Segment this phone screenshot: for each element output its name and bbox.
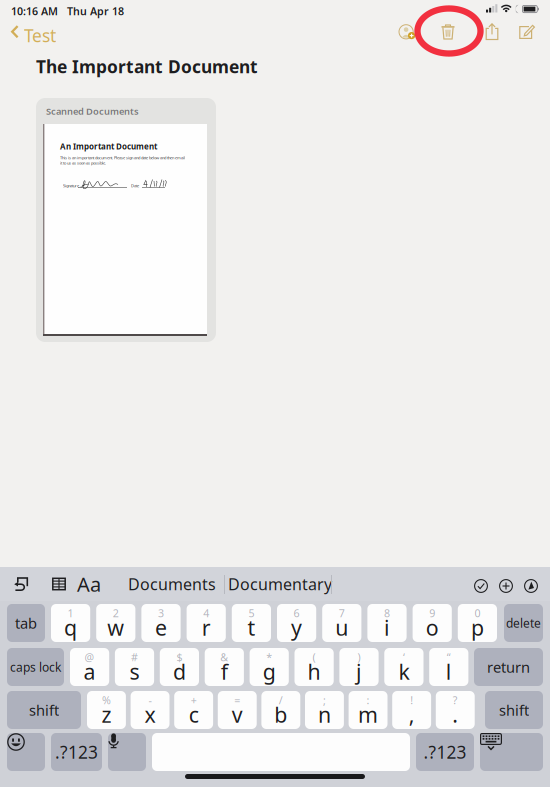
button[interactable]: 3: [141, 604, 181, 642]
button[interactable]: 4: [187, 604, 226, 642]
button[interactable]: $: [160, 648, 199, 686]
button[interactable]: ;: [305, 691, 344, 729]
button[interactable]: -: [131, 691, 169, 729]
button[interactable]: =: [218, 691, 257, 729]
staticText: o: [426, 613, 439, 642]
button[interactable]: @: [70, 648, 109, 686]
staticText: #: [131, 650, 138, 664]
button[interactable]: delete: [504, 604, 543, 642]
button[interactable]: Dictate: [108, 733, 146, 771]
staticText: .: [452, 700, 458, 729]
staticText: +: [191, 693, 197, 707]
button[interactable]: ?: [436, 691, 475, 729]
button[interactable]: 1: [51, 604, 90, 642]
button[interactable]: Insert: [496, 576, 516, 596]
staticText: j: [356, 657, 362, 686]
button[interactable]: Add People: [391, 18, 423, 46]
button[interactable]: Undo: [7, 570, 35, 598]
staticText: q: [64, 613, 77, 642]
staticText: Documents: [128, 573, 216, 595]
button[interactable]: ‘: [384, 648, 423, 686]
button[interactable]: Share: [476, 18, 508, 46]
staticText: %: [102, 693, 111, 707]
staticText: @: [85, 650, 95, 664]
staticText: y: [291, 613, 302, 642]
button[interactable]: .?123: [416, 733, 474, 771]
staticText: 10:16 AM Thu Apr 18: [11, 4, 124, 18]
button[interactable]: 9: [413, 604, 452, 642]
staticText: p: [471, 613, 484, 642]
staticText: /: [279, 693, 283, 707]
staticText: shift: [29, 700, 59, 720]
button[interactable]: 6: [277, 604, 316, 642]
staticText: b: [274, 700, 287, 729]
button[interactable]: 7: [322, 604, 361, 642]
button[interactable]: Hide Keyboard: [480, 733, 543, 771]
staticText: ?: [453, 693, 458, 707]
staticText: v: [232, 700, 243, 729]
button[interactable]: “: [429, 648, 468, 686]
staticText: u: [335, 613, 348, 642]
button[interactable]: +: [174, 691, 213, 729]
staticText: tab: [15, 613, 37, 633]
button[interactable]: Markup: [521, 576, 541, 596]
staticText: n: [318, 700, 331, 729]
staticText: :: [367, 693, 370, 707]
button[interactable]: /: [261, 691, 300, 729]
staticText: 0: [474, 606, 480, 620]
button[interactable]: caps lock: [7, 648, 64, 686]
staticText: h: [308, 657, 321, 686]
staticText: Scanned Documents: [46, 105, 139, 117]
staticText: x: [144, 700, 155, 729]
staticText: Aa: [77, 571, 101, 597]
button[interactable]: 5: [232, 604, 271, 642]
staticText: l: [446, 657, 452, 686]
button[interactable]: Text Format: [74, 570, 104, 598]
button[interactable]: 2: [96, 604, 135, 642]
button[interactable]: &: [205, 648, 244, 686]
staticText: Documentary: [228, 573, 332, 595]
button[interactable]: :: [349, 691, 387, 729]
button[interactable]: (: [294, 648, 334, 686]
button[interactable]: %: [87, 691, 126, 729]
staticText: d: [173, 657, 186, 686]
button[interactable]: Done: [471, 576, 491, 596]
button[interactable]: #: [115, 648, 154, 686]
staticText: i: [384, 613, 390, 642]
button[interactable]: return: [474, 648, 543, 686]
staticText: delete: [506, 615, 541, 631]
button[interactable]: *: [250, 648, 289, 686]
button[interactable]: New Note: [511, 18, 543, 46]
staticText: caps lock: [10, 659, 61, 675]
staticText: =: [234, 693, 240, 707]
button[interactable]: 0: [458, 604, 497, 642]
staticText: The Important Document: [36, 55, 258, 78]
button[interactable]: Delete: [432, 18, 464, 46]
staticText: ;: [323, 693, 326, 707]
button[interactable]: Documentary: [228, 569, 332, 599]
staticText: Test: [24, 24, 56, 47]
button[interactable]: Documents: [125, 569, 219, 599]
staticText: w: [107, 613, 124, 642]
staticText: 4: [203, 606, 209, 620]
button[interactable]: Table: [45, 570, 73, 598]
button[interactable]: 8: [367, 604, 407, 642]
staticText: 7: [339, 606, 345, 620]
button[interactable]: !: [392, 691, 431, 729]
button[interactable]: Test: [0, 18, 52, 46]
button[interactable]: ): [339, 648, 379, 686]
button[interactable]: shift: [7, 691, 81, 729]
staticText: (: [313, 650, 316, 664]
staticText: “: [447, 650, 451, 664]
staticText: a: [84, 657, 96, 686]
staticText: 3: [158, 606, 164, 620]
staticText: 5: [248, 606, 254, 620]
button[interactable]: tab: [7, 604, 45, 642]
button[interactable]: Emoji: [7, 733, 45, 771]
button[interactable]: shift: [485, 691, 543, 729]
staticText: 6: [294, 606, 300, 620]
staticText: k: [398, 657, 409, 686]
staticText: s: [129, 657, 139, 686]
button[interactable]: .?123: [51, 733, 102, 771]
